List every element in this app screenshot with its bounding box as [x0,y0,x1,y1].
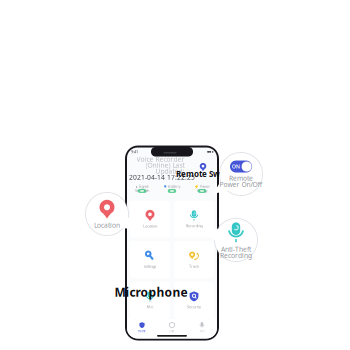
button[interactable]: Location [130,201,170,238]
staticText: Supply [196,188,207,193]
staticText: ✸ [163,184,166,188]
staticText: ON [232,163,240,170]
button[interactable]: Track [174,241,214,278]
button[interactable]: Home [127,322,157,333]
button[interactable]: Mic [130,282,170,319]
staticText: Settings [143,263,156,269]
staticText: Power On/Off [219,180,262,189]
staticText: Recording [220,251,252,260]
staticText: Signal [138,184,148,189]
staticText: Security [187,304,201,309]
staticText: 9:41 [131,149,138,154]
staticText: Strength [135,188,149,193]
button[interactable]: Care [157,322,187,333]
staticText: Power [199,184,210,189]
staticText: Care [169,330,175,333]
staticText: (Online) Last [145,161,184,170]
staticText: Location [94,221,120,230]
button[interactable]: Recording [174,201,214,238]
button[interactable]: Settings [130,241,170,278]
staticText: Anti-Theft [221,245,251,254]
staticText: Updated: [155,167,184,176]
staticText: ⚡ [193,184,198,189]
staticText: Voice Recorder [136,155,184,164]
staticText: Microphone [114,284,187,300]
staticText: ▴ [135,184,137,188]
button[interactable]: Rec [187,322,217,333]
staticText: Rec [199,330,204,333]
staticText: Track [189,263,199,269]
staticText: Remote [229,174,253,183]
staticText: Location [143,223,157,228]
staticText: Mic [146,304,153,309]
staticText: Battery [167,184,180,189]
staticText: ●● ▮ [207,150,213,153]
button[interactable]: Security [174,282,214,319]
staticText: Home [138,330,146,333]
staticText: Remote Switch [176,169,234,179]
staticText: Recording [185,223,202,228]
staticText: 2021-04-14 17:22:25 [129,173,195,182]
